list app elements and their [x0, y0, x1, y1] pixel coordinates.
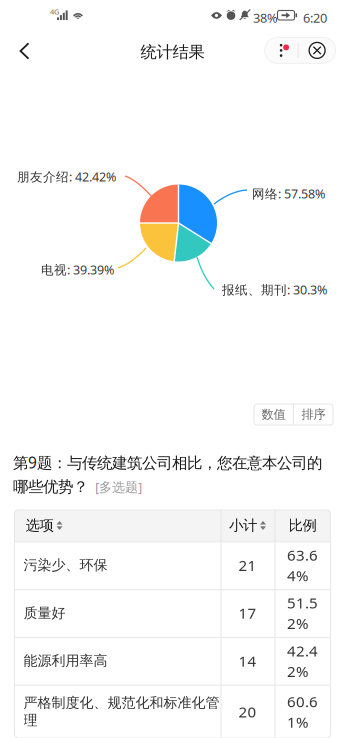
button[interactable]: 排序	[294, 404, 333, 425]
staticText: 6:20	[303, 9, 327, 26]
staticText: 数值	[261, 407, 285, 422]
staticText: 4G	[50, 6, 59, 17]
staticText: 污染少、环保	[23, 556, 107, 574]
staticText: 严格制度化、规范化和标准化管理	[23, 694, 219, 729]
staticText: 选项	[25, 516, 53, 534]
button[interactable]: 数值	[254, 404, 293, 425]
staticText: 电视: 39.39%	[41, 261, 114, 278]
staticText: 60.61%	[287, 691, 318, 732]
staticText: 网络: 57.58%	[252, 185, 325, 202]
staticText: 20	[238, 701, 256, 722]
staticText: 51.52%	[287, 592, 318, 633]
staticText: 朋友介绍: 42.42%	[17, 168, 116, 185]
staticText: 排序	[301, 407, 325, 422]
staticText: 比例	[288, 516, 316, 534]
staticText: 哪些优势？	[13, 477, 88, 497]
staticText: 质量好	[23, 604, 65, 622]
staticText: 21	[238, 555, 256, 575]
staticText: 38%	[253, 9, 278, 26]
staticText: 第9题：与传统建筑公司相比，您在意本公司的	[13, 452, 322, 473]
staticText: 统计结果	[140, 42, 204, 62]
staticText: 63.64%	[287, 545, 318, 586]
staticText: 17	[238, 603, 256, 623]
button[interactable]: Close	[299, 37, 336, 63]
staticText: 42.42%	[287, 640, 318, 681]
staticText: 能源利用率高	[23, 652, 107, 670]
staticText: 14	[238, 650, 256, 671]
button[interactable]: Back	[1, 30, 47, 72]
button[interactable]: More	[265, 37, 298, 63]
staticText: 报纸、期刊: 30.3%	[222, 281, 327, 298]
staticText: 小计	[229, 516, 257, 534]
staticText: [多选题]	[95, 478, 142, 496]
